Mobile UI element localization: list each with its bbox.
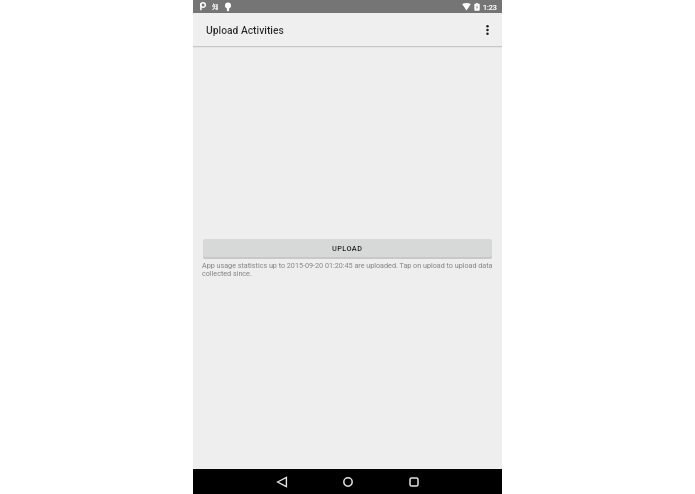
staticText: App usage statistics up to 2015-09-20 01… bbox=[202, 261, 495, 278]
button[interactable]: Home bbox=[335, 469, 361, 494]
button[interactable]: More options bbox=[472, 15, 502, 45]
staticText: Upload Activities bbox=[206, 24, 284, 36]
staticText: UPLOAD bbox=[332, 244, 363, 253]
staticText: 1:23 bbox=[483, 3, 497, 11]
button[interactable]: Recent apps bbox=[401, 469, 427, 494]
staticText: 知 bbox=[212, 3, 219, 11]
button[interactable]: Back bbox=[269, 469, 295, 494]
button[interactable]: UPLOAD bbox=[203, 239, 492, 257]
